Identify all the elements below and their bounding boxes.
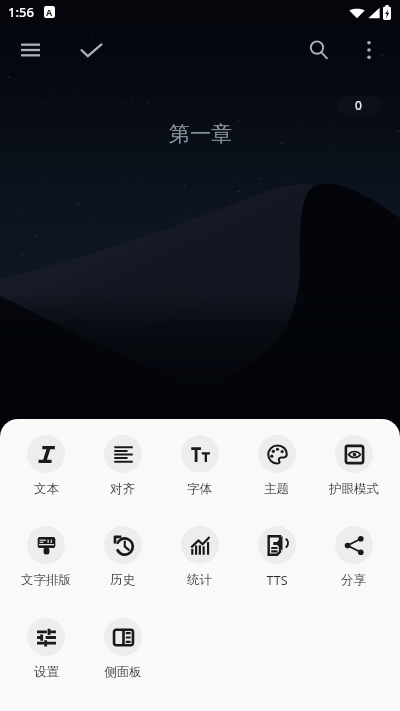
button[interactable]: 主题 bbox=[238, 435, 315, 497]
staticText: 字体 bbox=[187, 481, 212, 497]
button[interactable]: TTS bbox=[238, 526, 315, 589]
button[interactable]: 历史 bbox=[84, 526, 161, 588]
button[interactable]: More options bbox=[352, 33, 386, 67]
staticText: 主题 bbox=[264, 481, 289, 497]
button[interactable]: 分享 bbox=[315, 526, 392, 588]
button[interactable]: 文字排版 bbox=[8, 526, 84, 588]
staticText: 第一章 bbox=[169, 121, 232, 147]
button[interactable]: 侧面板 bbox=[84, 618, 161, 680]
button[interactable]: 统计 bbox=[161, 526, 238, 588]
button[interactable]: Search bbox=[297, 28, 341, 72]
staticText: 0 bbox=[355, 97, 362, 113]
staticText: 文本 bbox=[34, 481, 59, 497]
staticText: A bbox=[46, 6, 53, 18]
staticText: 侧面板 bbox=[104, 664, 142, 680]
staticText: 设置 bbox=[34, 664, 59, 680]
button[interactable]: Menu bbox=[10, 30, 50, 70]
staticText: 统计 bbox=[187, 572, 212, 588]
staticText: 1:56 bbox=[8, 3, 34, 21]
staticText: 历史 bbox=[110, 572, 135, 588]
staticText: 护眼模式 bbox=[329, 481, 379, 497]
staticText: 分享 bbox=[341, 572, 366, 588]
button[interactable]: 护眼模式 bbox=[315, 435, 392, 497]
button[interactable]: 设置 bbox=[8, 618, 84, 680]
staticText: TTS bbox=[266, 572, 288, 589]
staticText: 对齐 bbox=[110, 481, 135, 497]
button[interactable]: Done bbox=[71, 30, 111, 70]
staticText: 文字排版 bbox=[21, 572, 71, 588]
button[interactable]: 字体 bbox=[161, 435, 238, 497]
button[interactable]: 对齐 bbox=[84, 435, 161, 497]
button[interactable]: 文本 bbox=[8, 435, 84, 497]
